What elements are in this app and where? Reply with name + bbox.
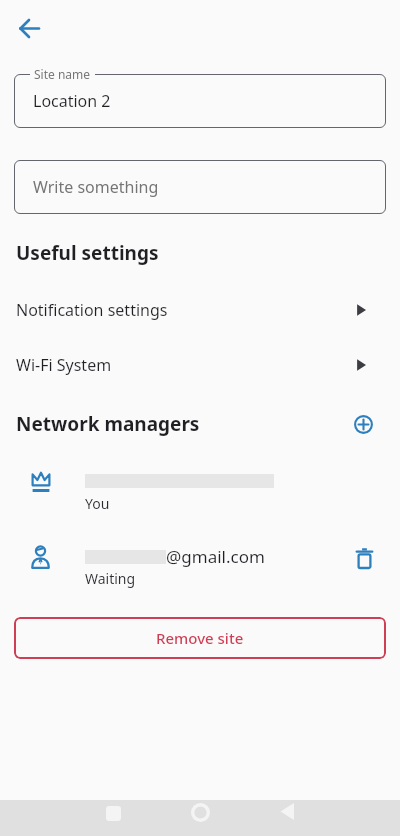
button[interactable]: Remove site [14,617,386,659]
staticText: @gmail.com [166,545,265,568]
staticText: Location 2 [33,90,111,112]
button[interactable] [99,800,127,828]
button[interactable] [347,541,381,575]
staticText: Write something [33,176,159,198]
staticText: You [85,494,110,513]
button[interactable] [9,8,49,48]
staticText: Notification settings [16,299,168,321]
button[interactable]: Write something [14,160,386,214]
staticText: Useful settings [16,240,159,266]
button[interactable]: You [0,471,400,513]
button[interactable]: Location 2 [14,74,386,128]
staticText: Wi-Fi System [16,354,112,376]
button[interactable] [186,800,214,828]
button[interactable]: Wi-Fi System [0,341,400,389]
staticText: Network managers [16,411,200,437]
button[interactable] [349,410,377,438]
button[interactable]: @gmail.com [0,545,400,588]
staticText: Waiting [85,569,136,588]
staticText: Remove site [156,628,244,648]
staticText: Site name [34,66,91,82]
button[interactable] [273,800,301,828]
button[interactable]: Notification settings [0,286,400,334]
